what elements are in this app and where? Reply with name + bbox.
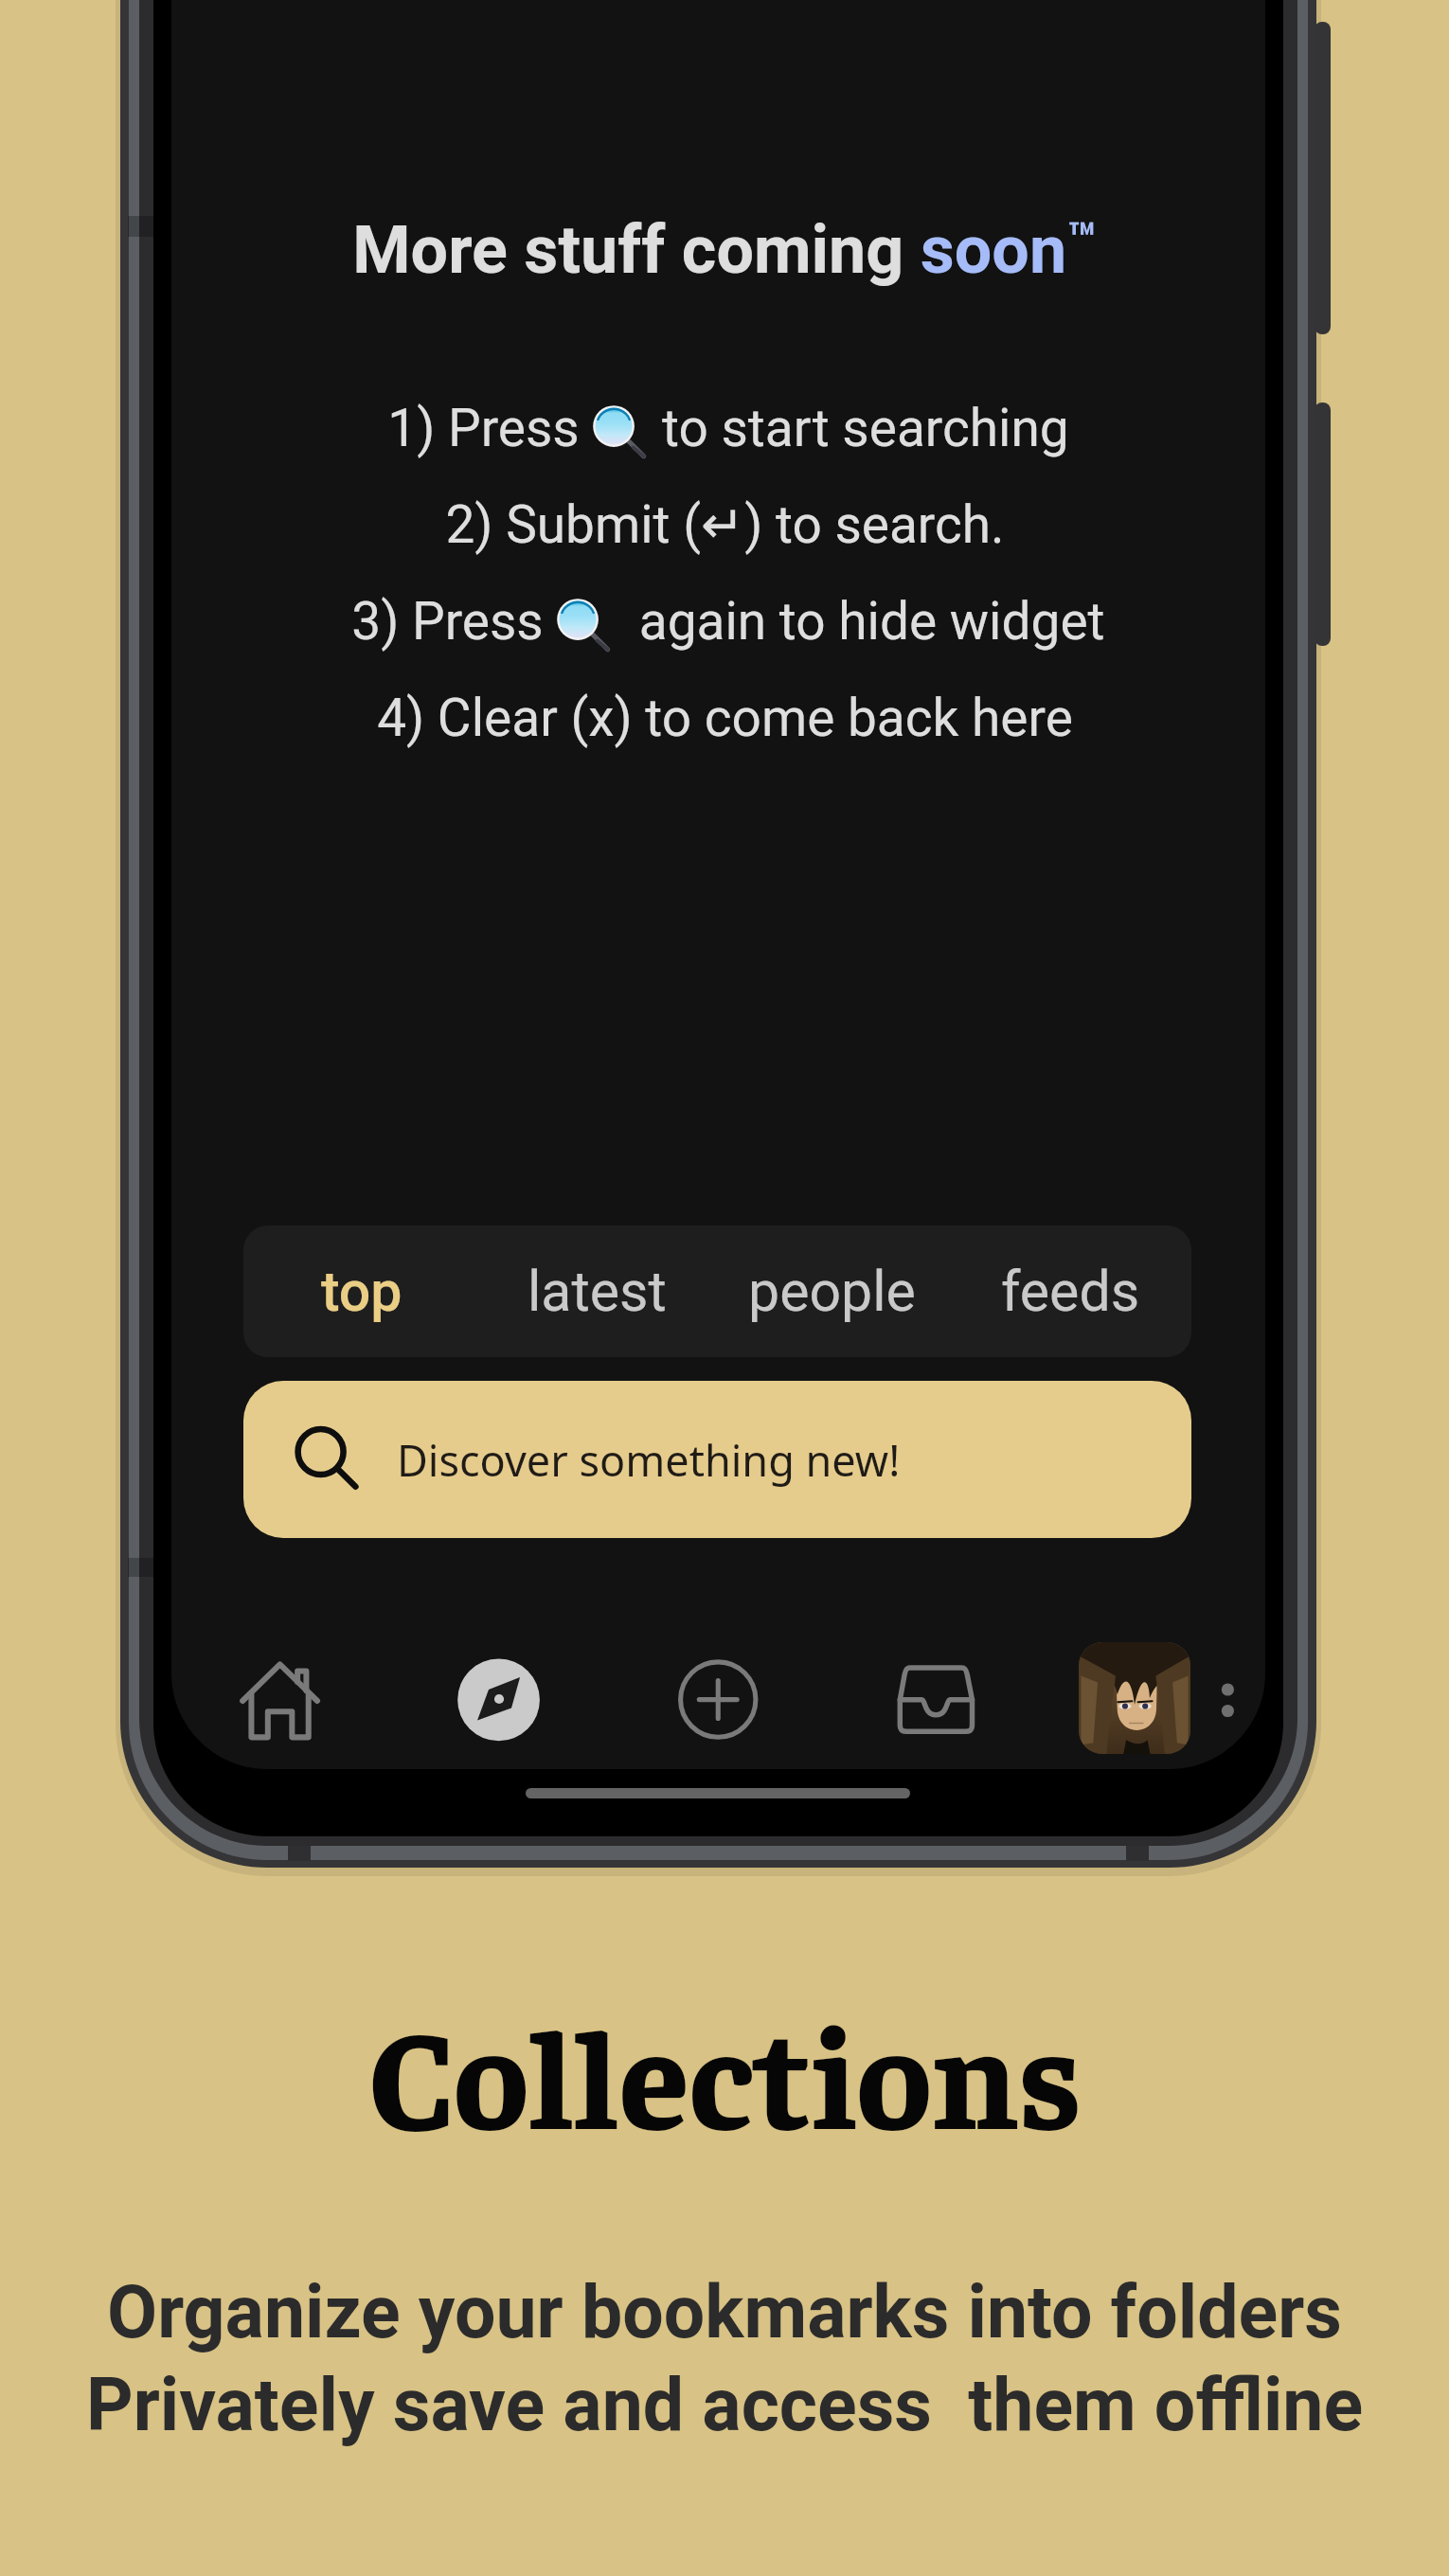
button[interactable]: Inbox (881, 1644, 991, 1754)
staticText: to start searching (649, 398, 1069, 458)
staticText: 3) Press (345, 591, 550, 652)
staticText: again to hide widget (613, 591, 1105, 652)
staticText: 2) Submit (↵) to search. (445, 494, 1005, 555)
button[interactable]: Discover something new! (243, 1381, 1191, 1538)
staticText: Organize your bookmarks into folders Pri… (0, 2270, 1449, 2448)
button[interactable]: Explore (441, 1644, 551, 1754)
button[interactable]: Profile (1079, 1642, 1190, 1754)
button[interactable]: latest (480, 1225, 713, 1357)
staticText: feeds (1001, 1259, 1140, 1324)
staticText: latest (528, 1259, 667, 1324)
staticText: 4) Clear (x) to come back here (377, 688, 1073, 748)
staticText: Discover something new! (397, 1431, 901, 1489)
staticText: top (321, 1259, 402, 1324)
staticText: More stuff coming soon™ (0, 211, 1449, 289)
button[interactable]: Create new post (660, 1644, 770, 1754)
staticText: 1) Press (381, 398, 586, 458)
button[interactable]: top (243, 1225, 480, 1357)
button[interactable]: people (713, 1225, 950, 1357)
button[interactable]: More options (1199, 1659, 1258, 1739)
staticText: Collections (368, 1983, 1082, 2159)
staticText: people (748, 1259, 916, 1324)
button[interactable]: feeds (950, 1225, 1191, 1357)
button[interactable]: Home (224, 1644, 334, 1754)
